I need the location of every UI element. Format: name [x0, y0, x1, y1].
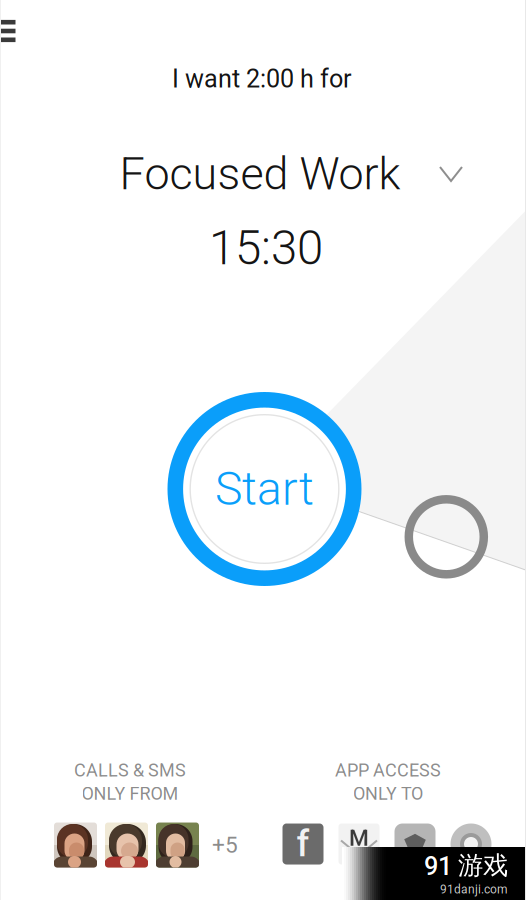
staticText: CALLS & SMS [74, 760, 186, 781]
staticText: ONLY TO [353, 783, 423, 804]
staticText: Start [215, 462, 314, 516]
button[interactable]: Allowed apps [281, 820, 493, 868]
staticText: ONLY FROM [81, 783, 178, 804]
staticText: M [349, 825, 369, 851]
staticText: 91danji.com [440, 882, 508, 896]
staticText: f [296, 823, 309, 865]
staticText: Focused Work [119, 148, 400, 200]
staticText: 91 游戏 [424, 849, 508, 881]
button[interactable]: Start [167, 392, 361, 586]
button[interactable]: Allowed contacts [54, 819, 250, 871]
staticText: APP ACCESS [335, 760, 441, 781]
button[interactable]: Menu [0, 10, 31, 52]
button[interactable]: APP ACCESS [288, 752, 488, 812]
staticText: I want 2:00 h for [172, 64, 352, 94]
button[interactable]: CALLS & SMS [30, 752, 230, 812]
staticText: 15:30 [209, 220, 323, 276]
staticText: +5 [212, 832, 238, 858]
button[interactable]: Focused Work [124, 145, 484, 203]
